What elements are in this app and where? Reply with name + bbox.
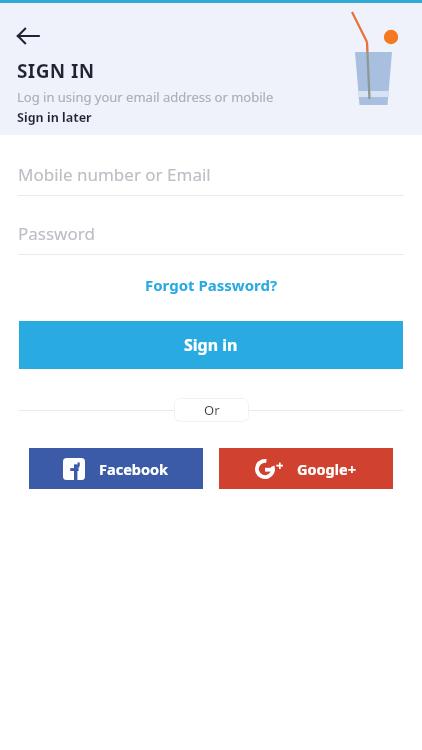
staticText: + xyxy=(276,456,284,474)
staticText: Facebook xyxy=(99,459,169,479)
button[interactable]: Password xyxy=(0,213,422,255)
staticText: Log in using your email address or mobil… xyxy=(17,88,274,106)
staticText: Sign in xyxy=(184,334,238,356)
staticText: Or xyxy=(204,401,220,419)
button[interactable]: Back xyxy=(6,14,50,58)
staticText: Mobile number or Email xyxy=(18,163,211,186)
button[interactable]: + xyxy=(219,448,393,489)
staticText: SIGN IN xyxy=(17,58,95,84)
button[interactable]: Sign in xyxy=(19,321,403,369)
button[interactable]: Mobile number or Email xyxy=(0,154,422,196)
staticText: Sign in later xyxy=(17,109,92,126)
staticText: Password xyxy=(18,222,95,245)
button[interactable]: Facebook xyxy=(29,448,203,489)
staticText: Google+ xyxy=(297,459,357,479)
button[interactable]: Forgot Password? xyxy=(135,270,288,300)
staticText: Forgot Password? xyxy=(145,275,278,295)
button[interactable]: Sign in later xyxy=(17,109,92,126)
